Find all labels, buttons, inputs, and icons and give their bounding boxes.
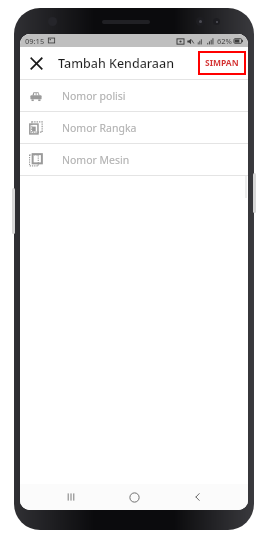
button[interactable]: Close <box>20 47 52 79</box>
button[interactable]: Home <box>121 484 147 510</box>
button[interactable]: Back <box>185 484 211 510</box>
button[interactable]: SIMPAN <box>198 51 246 75</box>
button[interactable]: Nomor polisi <box>20 80 248 111</box>
staticText: 09:15 <box>25 36 45 46</box>
staticText: Nomor Rangka <box>62 121 137 135</box>
button[interactable]: Nomor Rangka <box>20 112 248 143</box>
staticText: 62% <box>217 36 232 46</box>
staticText: SIMPAN <box>205 57 239 69</box>
staticText: Nomor Mesin <box>62 153 130 167</box>
button[interactable]: Nomor Mesin <box>20 144 248 175</box>
button[interactable]: Recent apps <box>58 484 84 510</box>
staticText: Tambah Kendaraan <box>58 55 174 72</box>
staticText: Nomor polisi <box>62 89 126 103</box>
